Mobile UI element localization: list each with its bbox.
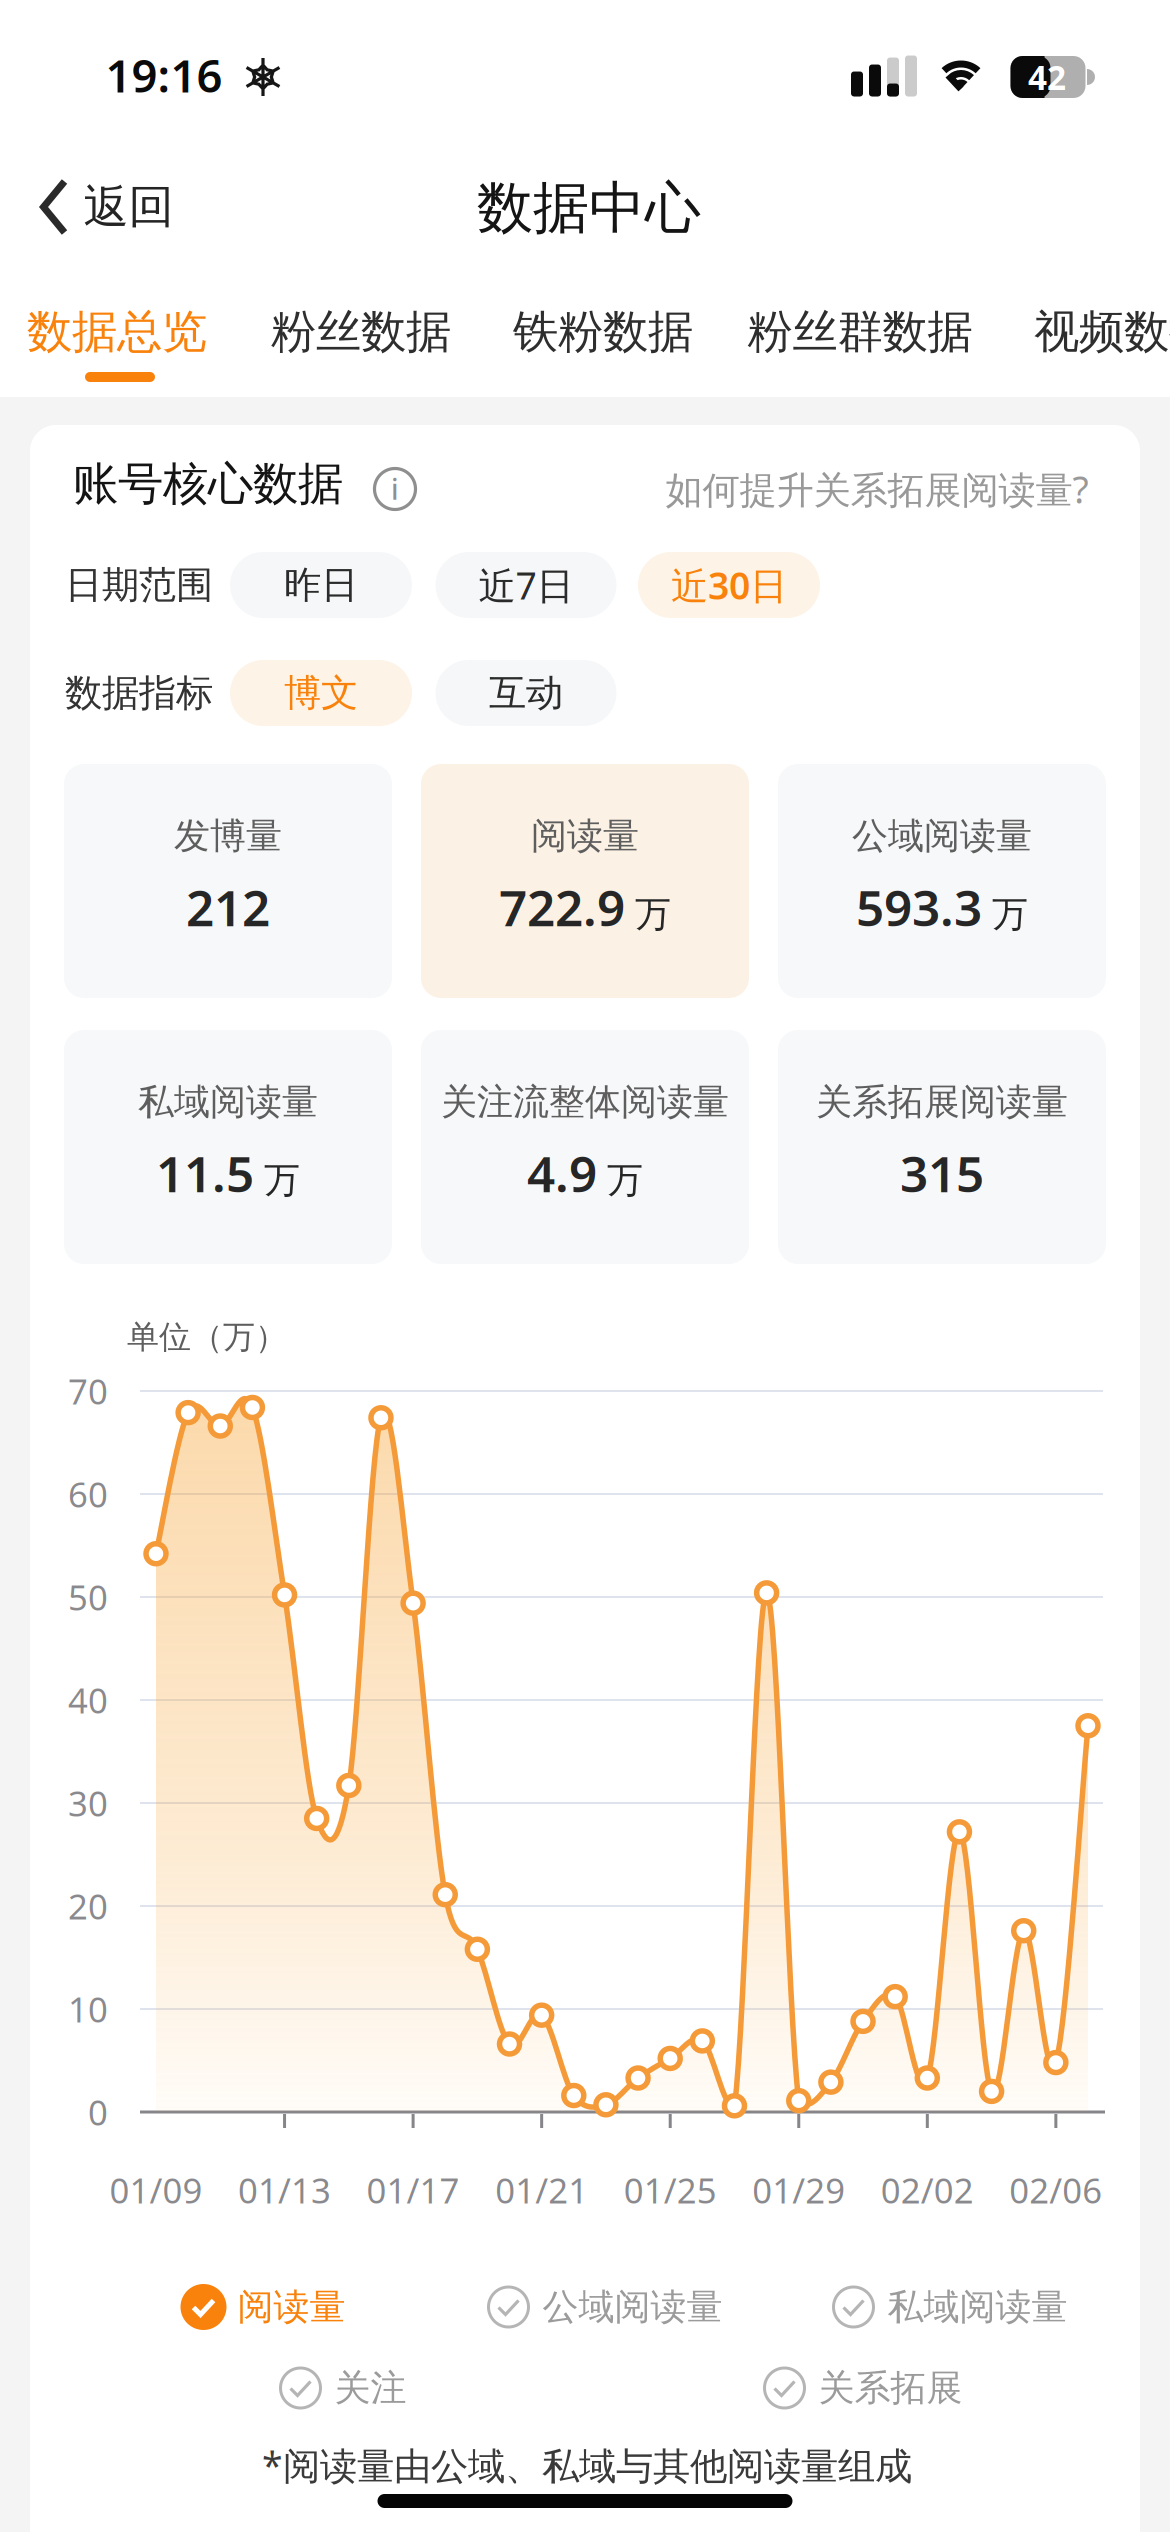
staticText: 如何提升关系拓展阅读量?: [665, 464, 1088, 514]
staticText: 20: [68, 1883, 108, 1929]
button[interactable]: 关注流整体阅读量: [421, 1030, 749, 1264]
button[interactable]: 关系拓展阅读量: [778, 1030, 1106, 1264]
staticText: 30: [68, 1780, 108, 1826]
staticText: 关系拓展阅读量: [816, 1080, 1068, 1124]
staticText: 11.5: [156, 1140, 254, 1206]
staticText: 40: [68, 1677, 108, 1723]
button[interactable]: 私域阅读量: [830, 2284, 1067, 2330]
staticText: 4.9: [527, 1140, 597, 1206]
staticText: 722.9: [499, 874, 625, 940]
button[interactable]: 互动: [435, 660, 616, 726]
button[interactable]: 返回: [38, 177, 173, 236]
staticText: 70: [68, 1368, 108, 1414]
button[interactable]: i: [374, 468, 415, 509]
staticText: 万: [264, 1158, 300, 1202]
staticText: 私域阅读量: [887, 2285, 1067, 2329]
button[interactable]: 数据总览: [27, 304, 207, 360]
staticText: 近30日: [671, 560, 787, 610]
staticText: 数据中心: [477, 174, 701, 242]
staticText: 10: [68, 1986, 108, 2032]
staticText: 昨日: [284, 562, 358, 608]
staticText: 粉丝数据: [271, 304, 451, 360]
staticText: 公域阅读量: [852, 814, 1032, 858]
staticText: 返回: [83, 179, 173, 235]
staticText: 日期范围: [65, 562, 213, 608]
staticText: 212: [186, 874, 270, 940]
staticText: 19:16: [105, 45, 222, 105]
staticText: 关注流整体阅读量: [441, 1080, 729, 1124]
staticText: 视频数据: [1034, 304, 1170, 360]
button[interactable]: 发博量: [64, 764, 392, 998]
button[interactable]: 关系拓展: [761, 2365, 962, 2411]
button[interactable]: 铁粉数据: [513, 304, 693, 360]
button[interactable]: 近7日: [435, 552, 616, 618]
staticText: i: [391, 470, 399, 508]
staticText: 0: [88, 2089, 108, 2135]
staticText: 关系拓展: [818, 2366, 962, 2410]
staticText: 单位（万）: [127, 1317, 287, 1357]
button[interactable]: 公域阅读量: [778, 764, 1106, 998]
button[interactable]: 粉丝群数据: [747, 304, 972, 360]
staticText: 50: [68, 1574, 108, 1620]
staticText: 01/21: [495, 2167, 588, 2213]
button[interactable]: 阅读量: [180, 2284, 345, 2330]
button[interactable]: 视频数据: [1034, 304, 1170, 360]
button[interactable]: 昨日: [230, 552, 412, 618]
staticText: 02/06: [1009, 2167, 1102, 2213]
staticText: 01/09: [109, 2167, 202, 2213]
staticText: 60: [68, 1471, 108, 1517]
staticText: 01/13: [238, 2167, 331, 2213]
staticText: 铁粉数据: [513, 304, 693, 360]
staticText: 关注: [334, 2366, 406, 2410]
staticText: 发博量: [174, 814, 282, 858]
staticText: 万: [607, 1158, 643, 1202]
staticText: *阅读量由公域、私域与其他阅读量组成: [262, 2440, 912, 2490]
staticText: 数据总览: [27, 304, 207, 360]
staticText: 近7日: [478, 560, 573, 610]
staticText: 私域阅读量: [138, 1080, 318, 1124]
button[interactable]: 粉丝数据: [271, 304, 451, 360]
staticText: 账号核心数据: [73, 456, 343, 512]
staticText: 593.3: [856, 874, 982, 940]
button[interactable]: 近30日: [638, 552, 820, 618]
staticText: 阅读量: [237, 2285, 345, 2329]
staticText: 数据指标: [65, 670, 213, 716]
staticText: 01/25: [624, 2167, 717, 2213]
button[interactable]: 关注: [277, 2365, 406, 2411]
staticText: 01/29: [752, 2167, 845, 2213]
staticText: 01/17: [367, 2167, 460, 2213]
button[interactable]: 博文: [230, 660, 412, 726]
button[interactable]: 私域阅读量: [64, 1030, 392, 1264]
staticText: 42: [1028, 55, 1066, 99]
staticText: 315: [900, 1140, 984, 1206]
staticText: 粉丝群数据: [747, 304, 972, 360]
button[interactable]: 阅读量: [421, 764, 749, 998]
staticText: 博文: [284, 670, 358, 716]
staticText: 公域阅读量: [542, 2285, 722, 2329]
staticText: 万: [992, 892, 1028, 936]
staticText: 阅读量: [531, 814, 639, 858]
staticText: 万: [635, 892, 671, 936]
button[interactable]: 如何提升关系拓展阅读量?: [665, 464, 1088, 514]
staticText: 02/02: [881, 2167, 974, 2213]
button[interactable]: 公域阅读量: [485, 2284, 722, 2330]
staticText: 互动: [489, 670, 563, 716]
